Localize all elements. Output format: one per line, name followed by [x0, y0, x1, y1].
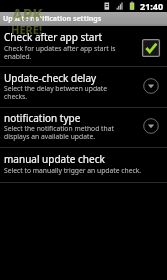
staticText: Select to manually trigger an update che… — [4, 166, 154, 175]
staticText: Select the notification method that disp… — [4, 124, 122, 141]
staticText: Select the delay between update checks. — [4, 84, 122, 101]
staticText: Check after app start — [4, 30, 122, 44]
staticText: 21:40 — [140, 0, 164, 12]
staticText: manual update check — [4, 152, 154, 166]
button[interactable]: Check after app start checkbox — [142, 39, 160, 57]
staticText: notification type — [4, 111, 122, 125]
button[interactable]: Update-check delay — [0, 67, 167, 107]
button[interactable]: Update-check delay — [143, 78, 159, 94]
staticText: APK — [12, 4, 43, 25]
staticText: Update-check delay — [4, 71, 122, 85]
staticText: Update notification settings — [3, 14, 102, 24]
button[interactable]: notification type — [0, 108, 167, 147]
button[interactable]: manual update check — [0, 148, 167, 182]
staticText: HERE! — [11, 22, 43, 37]
staticText: Check for updates after app start is ena… — [4, 44, 122, 61]
button[interactable]: Check after app start — [0, 26, 167, 66]
button[interactable]: Notification type — [143, 118, 159, 134]
